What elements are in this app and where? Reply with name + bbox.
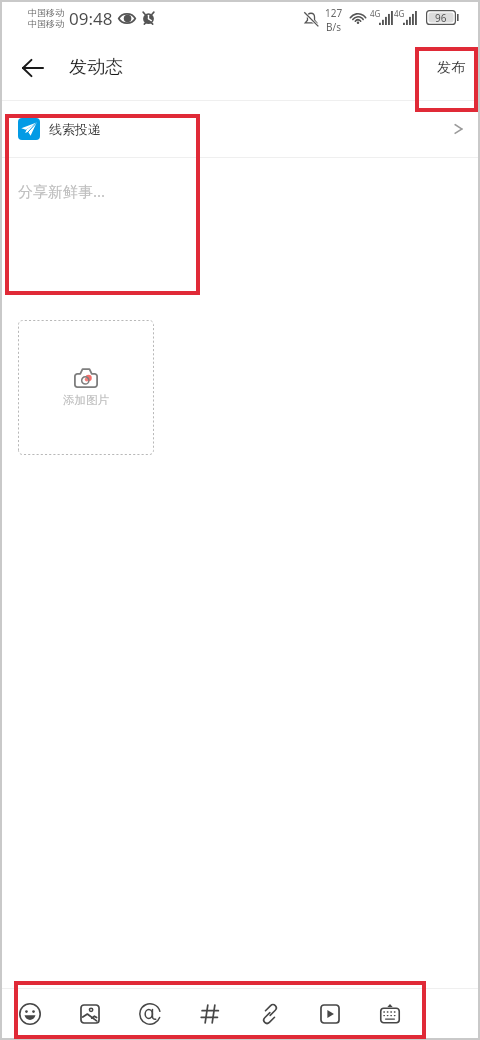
staticText: 127: [325, 6, 343, 20]
button[interactable]: 线索投递: [0, 101, 480, 157]
staticText: 09:48: [69, 7, 113, 30]
button[interactable]: Back: [8, 44, 56, 92]
staticText: 4G: [370, 8, 381, 19]
button[interactable]: Keyboard: [367, 991, 413, 1037]
staticText: 分享新鲜事...: [18, 181, 106, 201]
button[interactable]: 分享新鲜事...: [0, 158, 480, 308]
button[interactable]: Video: [307, 991, 353, 1037]
staticText: B/s: [326, 20, 342, 34]
staticText: 中国移动: [28, 7, 64, 18]
button[interactable]: 发布: [426, 48, 476, 88]
staticText: 96: [435, 11, 447, 25]
button[interactable]: 添加图片: [18, 320, 154, 455]
staticText: 发动态: [69, 56, 123, 79]
button[interactable]: Mention: [127, 991, 173, 1037]
staticText: 中国移动: [28, 18, 64, 29]
staticText: 发布: [437, 59, 465, 77]
button[interactable]: Link: [247, 991, 293, 1037]
staticText: 添加图片: [63, 393, 109, 407]
staticText: 线索投递: [49, 121, 101, 137]
button[interactable]: Image: [67, 991, 113, 1037]
staticText: 4G: [394, 8, 405, 19]
button[interactable]: Emoji: [7, 991, 53, 1037]
button[interactable]: Topic: [187, 991, 233, 1037]
